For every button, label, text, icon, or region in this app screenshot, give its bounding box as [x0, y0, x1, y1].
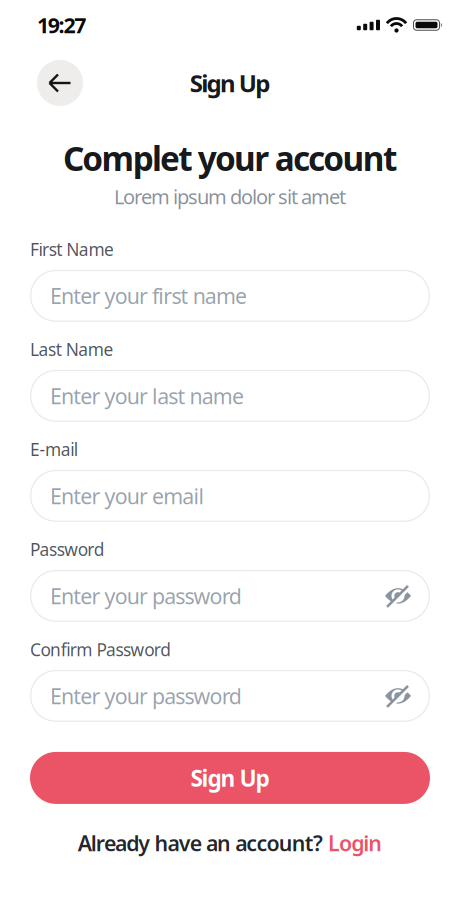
staticText: Enter your email [50, 482, 204, 510]
button[interactable]: Show password [385, 583, 411, 609]
staticText: Enter your last name [50, 382, 244, 410]
staticText: Confirm Password [30, 638, 171, 661]
staticText: 19:27 [37, 11, 86, 39]
staticText: Last Name [30, 338, 113, 361]
staticText: Enter your password [50, 682, 242, 710]
staticText: Lorem ipsum dolor sit amet [114, 183, 346, 210]
staticText: First Name [30, 238, 114, 261]
staticText: Already have an account? [78, 829, 323, 857]
staticText: Sign Up [190, 763, 269, 793]
button[interactable]: E-mail [30, 470, 430, 522]
button[interactable]: First Name [30, 270, 430, 322]
staticText: Login [328, 829, 382, 857]
button[interactable]: Show password [385, 683, 411, 709]
staticText: Password [30, 538, 105, 561]
staticText: Sign Up [190, 67, 270, 99]
staticText: Enter your first name [50, 282, 247, 310]
button[interactable]: Confirm Password [30, 670, 430, 722]
staticText: Complet your account [63, 136, 397, 180]
staticText: E-mail [30, 438, 78, 461]
staticText: Enter your password [50, 582, 242, 610]
button[interactable]: Last Name [30, 370, 430, 422]
button[interactable]: Login [328, 829, 382, 857]
button[interactable]: Back [30, 60, 90, 106]
button[interactable]: Password [30, 570, 430, 622]
button[interactable]: Sign Up [30, 752, 430, 804]
